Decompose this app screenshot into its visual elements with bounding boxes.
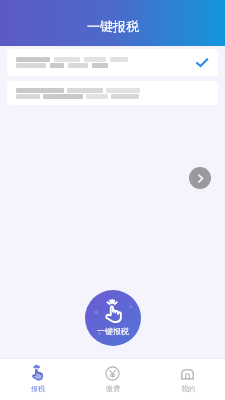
button[interactable]: Next (189, 167, 211, 189)
staticText: 一键报税 (97, 326, 129, 336)
button[interactable]: 一键报税 (85, 290, 141, 346)
staticText: 我的 (181, 384, 195, 393)
staticText: 缴费 (106, 384, 120, 393)
staticText: 报税 (31, 384, 45, 393)
staticText: 一键报税 (87, 18, 139, 34)
button[interactable]: 缴费 (75, 362, 150, 397)
button[interactable] (7, 81, 218, 105)
button[interactable]: 报税 (0, 362, 75, 397)
button[interactable]: 我的 (150, 362, 225, 397)
button[interactable] (7, 49, 218, 76)
